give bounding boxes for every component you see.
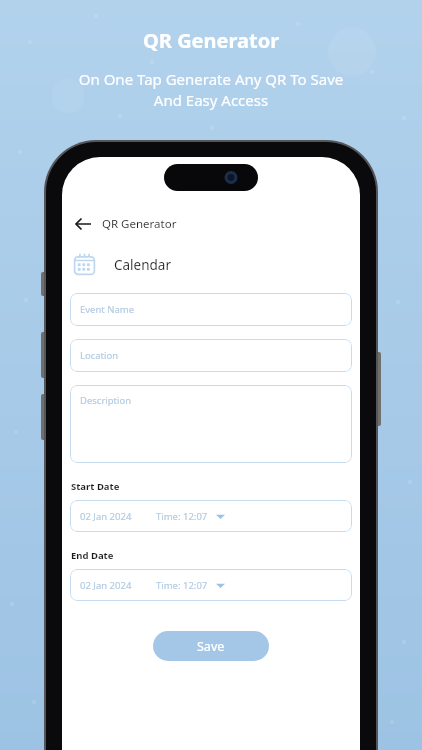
button[interactable]: Event Name [70,293,352,326]
staticText: 02 Jan 2024 [80,579,132,592]
staticText: Event Name [80,303,135,316]
staticText: On One Tap Generate Any QR To Save And E… [0,69,422,111]
button[interactable]: 02 Jan 2024 [70,569,352,601]
button[interactable]: Save [153,631,269,661]
staticText: 02 Jan 2024 [80,510,132,523]
button[interactable]: Calendar [70,251,352,278]
button[interactable]: Description [70,385,352,463]
staticText: Description [80,394,132,407]
staticText: Location [80,349,119,362]
staticText: Time: 12:07 [156,510,208,523]
staticText: QR Generator [143,27,280,54]
button[interactable]: Back [70,211,96,237]
staticText: Calendar [114,256,171,274]
button[interactable]: Location [70,339,352,372]
staticText: Start Date [71,480,120,493]
button[interactable]: 02 Jan 2024 [70,500,352,532]
staticText: QR Generator [102,216,177,232]
staticText: Time: 12:07 [156,579,208,592]
staticText: End Date [71,549,114,562]
staticText: Save [197,638,225,655]
